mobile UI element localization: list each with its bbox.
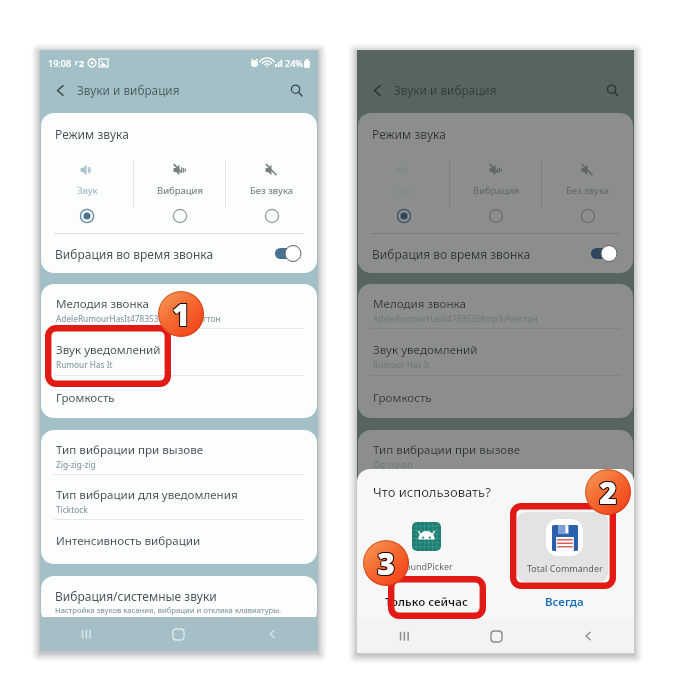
staticText: Тип вибрации при вызове: [373, 442, 521, 458]
button[interactable]: Вибрация/системные звуки: [41, 576, 317, 624]
staticText: 1: [173, 294, 191, 335]
staticText: Режим звука: [372, 126, 446, 142]
button[interactable]: Громкость: [358, 376, 633, 418]
staticText: Громкость: [56, 390, 115, 406]
staticText: 1: [173, 295, 191, 336]
staticText: Rumour Has It: [373, 359, 430, 370]
staticText: 1: [173, 293, 191, 334]
staticText: 3: [378, 542, 396, 583]
staticText: 1: [172, 293, 190, 334]
button[interactable]: Звук уведомлений: [41, 329, 317, 375]
staticText: Тип вибрации при вызове: [56, 442, 204, 458]
staticText: Настройка звуков касания, вибрации и отк…: [372, 605, 599, 615]
button[interactable]: Без звука: [226, 153, 317, 224]
staticText: Zig-zig-zig: [56, 459, 96, 470]
staticText: Интенсивность вибрации: [56, 533, 201, 549]
button[interactable]: Search: [285, 79, 307, 101]
button[interactable]: Вибрация: [134, 153, 225, 224]
staticText: 1: [172, 295, 190, 336]
button[interactable]: Звук уведомлений: [358, 329, 633, 375]
staticText: Мелодия звонка: [373, 296, 466, 312]
staticText: AdeleRumourHasIt47835358mp3 Рингтон: [373, 313, 538, 324]
button[interactable]: Total Commander: [495, 509, 634, 583]
button[interactable]: Громкость: [41, 376, 317, 418]
staticText: 2: [599, 473, 617, 514]
staticText: 3: [376, 544, 394, 585]
staticText: Вибрация: [473, 184, 519, 197]
staticText: Ticktock: [56, 504, 88, 515]
button[interactable]: Recents: [40, 617, 132, 651]
staticText: 1: [172, 294, 190, 335]
staticText: 3: [376, 542, 394, 583]
button[interactable]: Мелодия звонка: [41, 284, 317, 328]
button[interactable]: Звук: [41, 153, 133, 224]
staticText: 2: [599, 471, 617, 512]
staticText: Вибрация: [157, 184, 203, 197]
button[interactable]: Home: [132, 617, 225, 651]
staticText: Интенсивность вибрации: [373, 533, 518, 549]
button[interactable]: Вибрация/системные звуки: [358, 576, 633, 632]
staticText: 2: [600, 473, 618, 514]
button[interactable]: Тип вибрации при вызове: [41, 430, 317, 474]
staticText: Звуки и вибрация: [77, 82, 180, 98]
staticText: Режим звука: [55, 126, 129, 142]
button[interactable]: Вибрация во время звонка: [41, 234, 317, 273]
button[interactable]: Мелодия звонка: [358, 284, 633, 328]
button[interactable]: Всегда: [495, 588, 634, 616]
button[interactable]: Recents: [357, 619, 450, 653]
staticText: Вибрация/системные звуки: [55, 588, 217, 604]
button[interactable]: Вибрация во время звонка: [358, 234, 633, 273]
staticText: 2: [600, 471, 618, 512]
staticText: 2: [600, 472, 618, 513]
button[interactable]: Toggle vibrate on ring: [275, 245, 301, 262]
button[interactable]: Тип вибрации для уведомления: [358, 475, 633, 519]
staticText: Звук уведомлений: [373, 342, 478, 358]
staticText: 1: [171, 293, 189, 334]
button[interactable]: Back: [542, 619, 634, 653]
button[interactable]: Back: [49, 79, 71, 101]
staticText: Rumour Has It: [56, 359, 113, 370]
staticText: 2: [598, 473, 616, 514]
button[interactable]: SoundPicker: [357, 509, 495, 583]
staticText: Что использовать?: [373, 483, 491, 501]
staticText: SoundPicker: [400, 560, 453, 572]
button[interactable]: Без звука: [542, 153, 633, 224]
staticText: Вибрация во время звонка: [55, 246, 214, 262]
staticText: Без звука: [566, 184, 610, 197]
staticText: Zig-zig-zig: [373, 459, 413, 470]
staticText: 3: [378, 544, 396, 585]
button[interactable]: Toggle vibrate on ring: [591, 245, 617, 262]
button[interactable]: Интенсивность вибрации: [358, 520, 633, 562]
button[interactable]: Интенсивность вибрации: [41, 520, 317, 562]
staticText: 2: [599, 472, 617, 513]
staticText: Звуки и вибрация: [394, 82, 497, 98]
staticText: 2: [79, 57, 85, 69]
staticText: 1: [171, 295, 189, 336]
button[interactable]: Тип вибрации для уведомления: [41, 475, 317, 519]
staticText: Тип вибрации для уведомления: [56, 487, 238, 503]
staticText: Настройка звуков касания, вибрации и отк…: [55, 605, 282, 615]
button[interactable]: Тип вибрации при вызове: [358, 430, 633, 474]
button[interactable]: Back: [225, 617, 318, 651]
staticText: Вибрация во время звонка: [372, 246, 531, 262]
staticText: Без звука: [250, 184, 294, 197]
button[interactable]: Home: [450, 619, 542, 653]
button[interactable]: Вибрация: [450, 153, 541, 224]
staticText: 24%: [285, 57, 303, 69]
staticText: 3: [376, 543, 394, 584]
staticText: 2: [598, 472, 616, 513]
staticText: Всегда: [545, 594, 584, 610]
staticText: 3: [377, 543, 395, 584]
staticText: Только сейчас: [385, 594, 468, 610]
staticText: Мелодия звонка: [56, 296, 149, 312]
button[interactable]: Search: [601, 79, 623, 101]
button[interactable]: Back: [366, 79, 388, 101]
staticText: 1: [171, 294, 189, 335]
staticText: Громкость: [373, 390, 432, 406]
staticText: г: [75, 58, 79, 68]
button[interactable]: Только сейчас: [357, 588, 495, 616]
staticText: 3: [377, 544, 395, 585]
staticText: 3: [378, 543, 396, 584]
button[interactable]: Звук: [358, 153, 449, 224]
